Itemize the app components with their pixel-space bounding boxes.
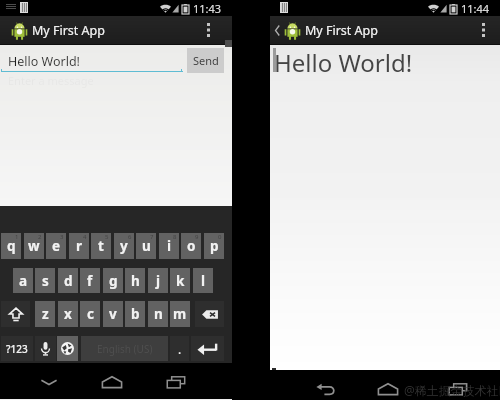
staticText: Hello World! bbox=[8, 53, 80, 70]
staticText: k bbox=[176, 272, 185, 290]
staticText: 0 bbox=[218, 233, 222, 241]
button[interactable]: b bbox=[125, 301, 145, 327]
staticText: g bbox=[109, 272, 118, 290]
staticText: z bbox=[42, 305, 49, 323]
button[interactable]: 6 bbox=[114, 233, 134, 259]
staticText: u bbox=[142, 237, 151, 255]
staticText: 1 bbox=[15, 233, 19, 241]
staticText: p bbox=[210, 237, 219, 255]
staticText: 3 bbox=[60, 233, 64, 241]
staticText: 9 bbox=[195, 233, 199, 241]
staticText: 5 bbox=[105, 233, 109, 241]
staticText: 7 bbox=[150, 233, 154, 241]
staticText: i bbox=[167, 237, 172, 255]
button[interactable]: More options bbox=[199, 16, 218, 44]
button[interactable]: Home bbox=[365, 377, 411, 400]
button[interactable]: Send bbox=[187, 48, 224, 73]
button[interactable]: Home bbox=[89, 370, 135, 394]
staticText: f bbox=[87, 272, 93, 290]
staticText: 8 bbox=[173, 233, 177, 241]
button[interactable]: 1 bbox=[1, 233, 21, 259]
button[interactable]: 3 bbox=[46, 233, 66, 259]
button[interactable]: More options bbox=[474, 16, 493, 44]
button[interactable]: 8 bbox=[159, 233, 179, 259]
staticText: j bbox=[156, 272, 161, 290]
button[interactable]: 2 bbox=[24, 233, 44, 259]
button[interactable]: Enter bbox=[191, 336, 224, 361]
button[interactable]: l bbox=[193, 268, 213, 293]
staticText: @稀土掘金技术社区 bbox=[404, 382, 500, 398]
staticText: s bbox=[42, 272, 49, 290]
staticText: v bbox=[109, 305, 117, 323]
staticText: My First App bbox=[32, 22, 105, 39]
staticText: d bbox=[64, 272, 73, 290]
staticText: q bbox=[7, 237, 16, 255]
button[interactable]: f bbox=[80, 268, 100, 293]
staticText: 11:44 bbox=[461, 1, 490, 16]
button[interactable]: Recent apps bbox=[435, 377, 481, 400]
staticText: o bbox=[187, 237, 196, 255]
button[interactable]: Recent apps bbox=[153, 370, 199, 394]
button[interactable]: 9 bbox=[181, 233, 201, 259]
button[interactable]: Hide keyboard bbox=[26, 370, 72, 394]
button[interactable]: k bbox=[170, 268, 190, 293]
button[interactable]: v bbox=[103, 301, 123, 327]
staticText: 2 bbox=[38, 233, 42, 241]
staticText: English (US) bbox=[97, 342, 153, 356]
staticText: 11:43 bbox=[193, 1, 222, 16]
staticText: Send bbox=[193, 53, 219, 68]
button[interactable]: Back bbox=[303, 377, 349, 400]
button[interactable]: n bbox=[148, 301, 168, 327]
staticText: 4 bbox=[83, 233, 87, 241]
staticText: h bbox=[131, 272, 140, 290]
button[interactable]: c bbox=[80, 301, 100, 327]
button[interactable]: Navigate up bbox=[270, 16, 284, 44]
button[interactable]: z bbox=[35, 301, 55, 327]
button[interactable]: Symbols bbox=[1, 336, 33, 361]
button[interactable]: Voice input bbox=[35, 336, 56, 361]
staticText: x bbox=[64, 305, 72, 323]
button[interactable]: Period bbox=[170, 336, 189, 361]
staticText: c bbox=[87, 305, 94, 323]
button[interactable]: Change language bbox=[57, 336, 78, 361]
staticText: a bbox=[19, 272, 28, 290]
button[interactable]: s bbox=[35, 268, 55, 293]
button[interactable]: 7 bbox=[136, 233, 156, 259]
staticText: m bbox=[173, 305, 187, 323]
button[interactable]: m bbox=[170, 301, 190, 327]
button[interactable]: d bbox=[58, 268, 78, 293]
staticText: e bbox=[52, 237, 61, 255]
button[interactable]: Shift bbox=[1, 301, 30, 327]
staticText: . bbox=[178, 341, 182, 357]
staticText: ?123 bbox=[6, 342, 28, 356]
button[interactable]: h bbox=[125, 268, 145, 293]
button[interactable]: 0 bbox=[204, 233, 224, 259]
staticText: Hello World! bbox=[274, 46, 413, 79]
button[interactable]: Delete bbox=[195, 301, 224, 327]
button[interactable]: j bbox=[148, 268, 168, 293]
staticText: t bbox=[98, 237, 104, 255]
button[interactable]: a bbox=[13, 268, 33, 293]
button[interactable]: g bbox=[103, 268, 123, 293]
staticText: n bbox=[154, 305, 163, 323]
button[interactable]: 4 bbox=[69, 233, 89, 259]
staticText: l bbox=[201, 272, 206, 290]
staticText: 6 bbox=[128, 233, 132, 241]
staticText: My First App bbox=[305, 22, 378, 39]
button[interactable]: x bbox=[58, 301, 78, 327]
staticText: r bbox=[76, 237, 83, 255]
staticText: y bbox=[120, 237, 128, 255]
button[interactable]: 5 bbox=[91, 233, 111, 259]
button[interactable]: Space bbox=[81, 336, 168, 361]
staticText: b bbox=[131, 305, 140, 323]
staticText: w bbox=[28, 237, 40, 255]
